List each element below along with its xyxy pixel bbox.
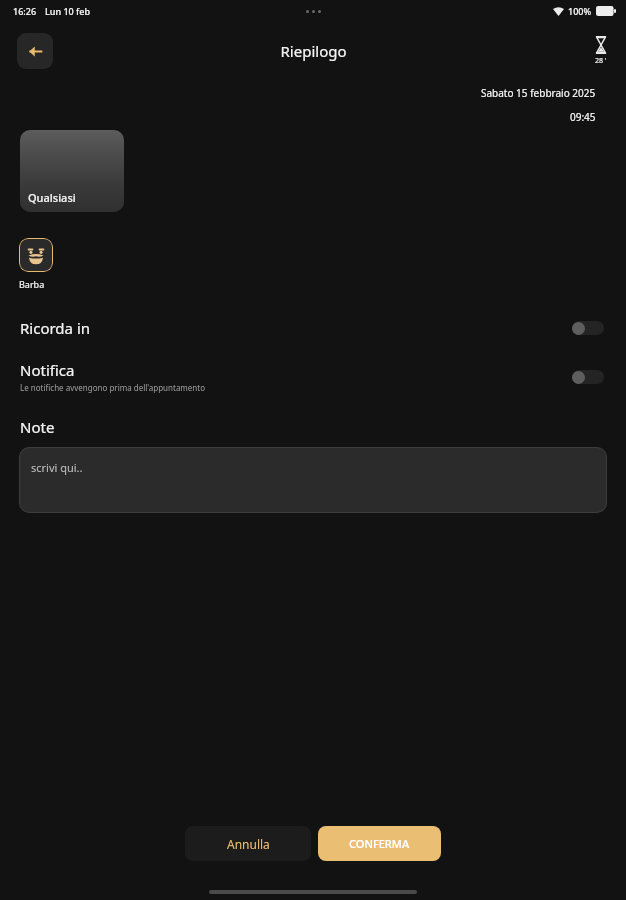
staticText: 100% bbox=[568, 5, 592, 17]
staticText: Ricorda in bbox=[20, 318, 91, 338]
staticText: Sabato 15 febbraio 2025 bbox=[481, 86, 596, 100]
staticText: scrivi qui.. bbox=[31, 460, 83, 475]
staticText: 16:26 bbox=[13, 5, 37, 17]
button[interactable]: Indietro bbox=[17, 33, 53, 69]
staticText: Notifica bbox=[20, 360, 75, 380]
staticText: Annulla bbox=[227, 836, 270, 852]
button[interactable]: Attiva bbox=[572, 320, 604, 336]
button[interactable]: Annulla bbox=[185, 826, 311, 861]
button[interactable]: Attiva bbox=[572, 369, 604, 385]
button[interactable]: Durata bbox=[592, 36, 610, 66]
staticText: Note bbox=[20, 417, 55, 437]
staticText: 09:45 bbox=[570, 110, 596, 124]
staticText: Le notifiche avvengono prima dell'appunt… bbox=[20, 382, 206, 393]
staticText: Lun 10 feb bbox=[45, 5, 91, 17]
staticText: 28 ' bbox=[595, 56, 607, 66]
button[interactable]: Barba bbox=[19, 238, 53, 272]
button[interactable]: CONFERMA bbox=[318, 826, 441, 861]
staticText: Qualsiasi bbox=[28, 190, 76, 205]
button[interactable]: Notifica bbox=[0, 356, 626, 397]
staticText: Riepilogo bbox=[280, 41, 347, 61]
button[interactable]: Qualsiasi bbox=[20, 130, 124, 212]
button[interactable]: scrivi qui.. bbox=[19, 447, 607, 513]
staticText: Barba bbox=[19, 278, 45, 290]
button[interactable]: Ricorda in bbox=[0, 314, 626, 342]
staticText: CONFERMA bbox=[349, 836, 410, 851]
